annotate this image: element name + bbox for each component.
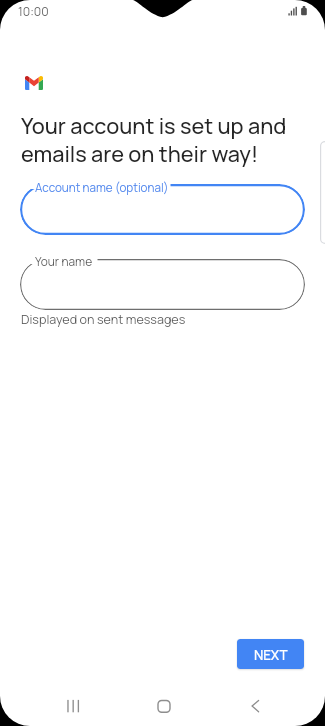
button[interactable]: Back bbox=[235, 686, 275, 726]
button[interactable]: Home bbox=[144, 686, 184, 726]
button[interactable]: NEXT bbox=[237, 639, 304, 669]
staticText: Account name (optional) bbox=[35, 180, 169, 196]
button[interactable]: Recent apps bbox=[54, 686, 94, 726]
staticText: Displayed on sent messages bbox=[21, 311, 186, 328]
button[interactable] bbox=[20, 184, 305, 235]
staticText: NEXT bbox=[254, 646, 288, 664]
staticText: Your account is set up and emails are on… bbox=[21, 111, 287, 169]
staticText: Your name bbox=[35, 253, 93, 269]
staticText: 10:00 bbox=[18, 3, 49, 20]
button[interactable] bbox=[20, 259, 305, 310]
